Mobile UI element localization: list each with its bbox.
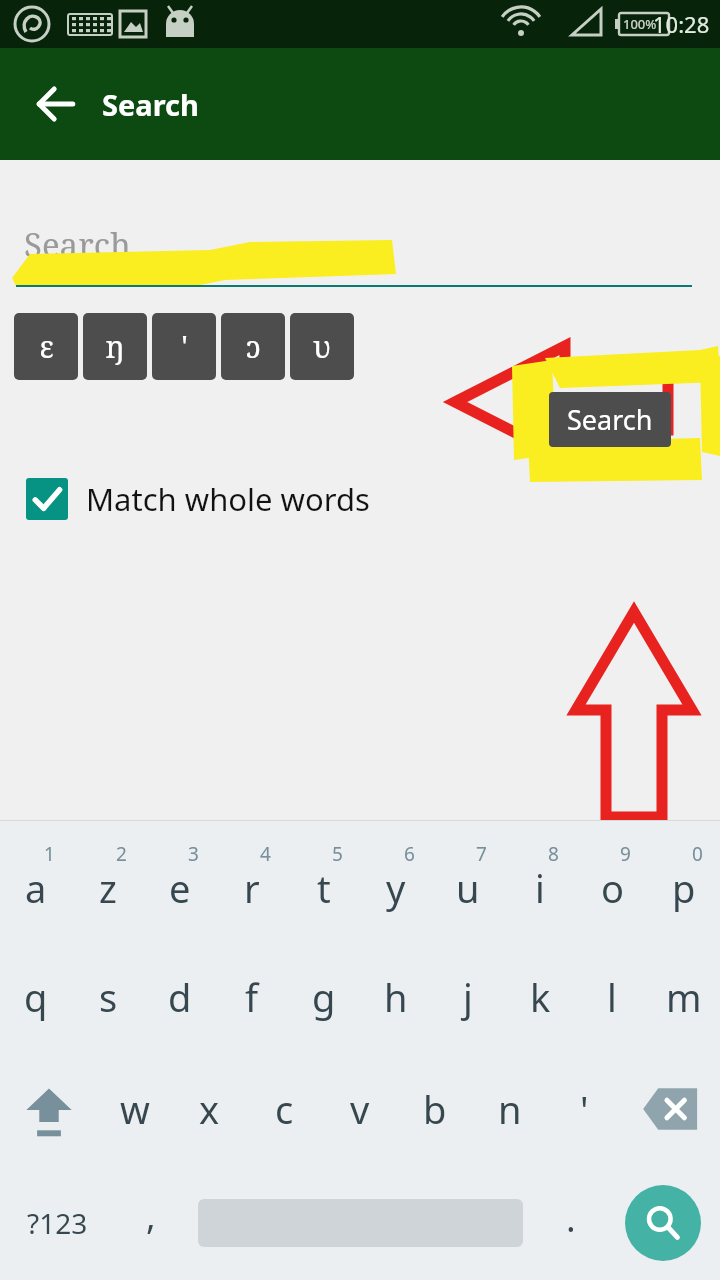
staticText: 10:28 (653, 9, 710, 39)
staticText: 2 (116, 841, 127, 867)
button[interactable]: n (472, 1053, 547, 1165)
staticText: Search (102, 85, 199, 124)
staticText: c (275, 1083, 294, 1135)
staticText: o (601, 862, 624, 914)
button[interactable]: ?123 (0, 1165, 115, 1280)
button[interactable]: ' (547, 1053, 622, 1165)
button[interactable]: f (216, 941, 288, 1053)
button[interactable]: Shift (0, 1053, 97, 1165)
staticText: ɔ (246, 326, 261, 367)
staticText: 5 (332, 841, 343, 867)
staticText: 100% (623, 15, 657, 33)
button[interactable]: Match whole words (26, 478, 370, 520)
staticText: , (146, 1191, 156, 1240)
staticText: 0 (692, 841, 703, 867)
button[interactable]: 0 (648, 821, 720, 941)
button[interactable]: 1 (0, 821, 72, 941)
staticText: l (607, 971, 617, 1023)
staticText: Match whole words (86, 478, 370, 520)
staticText: t (317, 862, 331, 914)
staticText: i (535, 862, 545, 914)
staticText: Search (24, 222, 131, 267)
staticText: k (530, 971, 551, 1023)
staticText: ʋ (313, 326, 331, 367)
staticText: s (99, 971, 118, 1023)
button[interactable]: 5 (288, 821, 360, 941)
button[interactable]: w (97, 1053, 172, 1165)
button[interactable]: Search (549, 392, 671, 447)
button[interactable]: v (322, 1053, 397, 1165)
button[interactable]: . (535, 1165, 606, 1280)
staticText: 1 (44, 841, 55, 867)
button[interactable]: m (648, 941, 720, 1053)
staticText: r (244, 862, 260, 914)
staticText: ' (181, 326, 188, 367)
button[interactable]: x (172, 1053, 247, 1165)
button[interactable]: Space (186, 1165, 535, 1280)
staticText: n (498, 1083, 522, 1135)
button[interactable]: Backspace (622, 1053, 720, 1165)
staticText: 7 (476, 841, 487, 867)
button[interactable]: 4 (216, 821, 288, 941)
button[interactable]: 9 (576, 821, 648, 941)
staticText: ' (580, 1083, 589, 1135)
button[interactable]: c (247, 1053, 322, 1165)
staticText: h (384, 971, 408, 1023)
staticText: f (245, 971, 259, 1023)
button[interactable]: k (504, 941, 576, 1053)
staticText: Search (567, 401, 653, 438)
button[interactable]: ɛ (14, 313, 78, 380)
staticText: p (672, 862, 696, 914)
staticText: 9 (620, 841, 631, 867)
button[interactable]: 2 (72, 821, 144, 941)
button[interactable]: 7 (432, 821, 504, 941)
staticText: x (199, 1083, 220, 1135)
staticText: . (566, 1194, 576, 1243)
staticText: ?123 (27, 1204, 88, 1242)
button[interactable]: g (288, 941, 360, 1053)
staticText: j (463, 971, 473, 1023)
staticText: u (456, 862, 480, 914)
staticText: 8 (548, 841, 559, 867)
button[interactable]: 8 (504, 821, 576, 941)
button[interactable]: ʋ (290, 313, 354, 380)
button[interactable]: ŋ (83, 313, 147, 380)
button[interactable]: Back (20, 68, 92, 140)
staticText: m (666, 971, 702, 1023)
button[interactable]: ɔ (221, 313, 285, 380)
staticText: v (350, 1083, 370, 1135)
staticText: y (386, 862, 406, 914)
button[interactable]: l (576, 941, 648, 1053)
button[interactable]: 6 (360, 821, 432, 941)
staticText: e (169, 862, 191, 914)
staticText: 4 (260, 841, 271, 867)
button[interactable]: s (72, 941, 144, 1053)
staticText: a (25, 862, 47, 914)
staticText: q (24, 971, 48, 1023)
button[interactable]: h (360, 941, 432, 1053)
button[interactable]: j (432, 941, 504, 1053)
staticText: 3 (188, 841, 199, 867)
staticText: ɛ (39, 326, 54, 367)
button[interactable]: , (115, 1165, 186, 1280)
staticText: 6 (404, 841, 415, 867)
button[interactable]: 3 (144, 821, 216, 941)
staticText: z (99, 862, 117, 914)
staticText: d (168, 971, 192, 1023)
staticText: ŋ (105, 326, 125, 367)
button[interactable]: d (144, 941, 216, 1053)
button[interactable]: Search (606, 1165, 720, 1280)
staticText: w (120, 1083, 150, 1135)
button[interactable]: ' (152, 313, 216, 380)
button[interactable]: b (397, 1053, 472, 1165)
staticText: b (423, 1083, 447, 1135)
staticText: g (312, 971, 336, 1023)
button[interactable]: q (0, 941, 72, 1053)
